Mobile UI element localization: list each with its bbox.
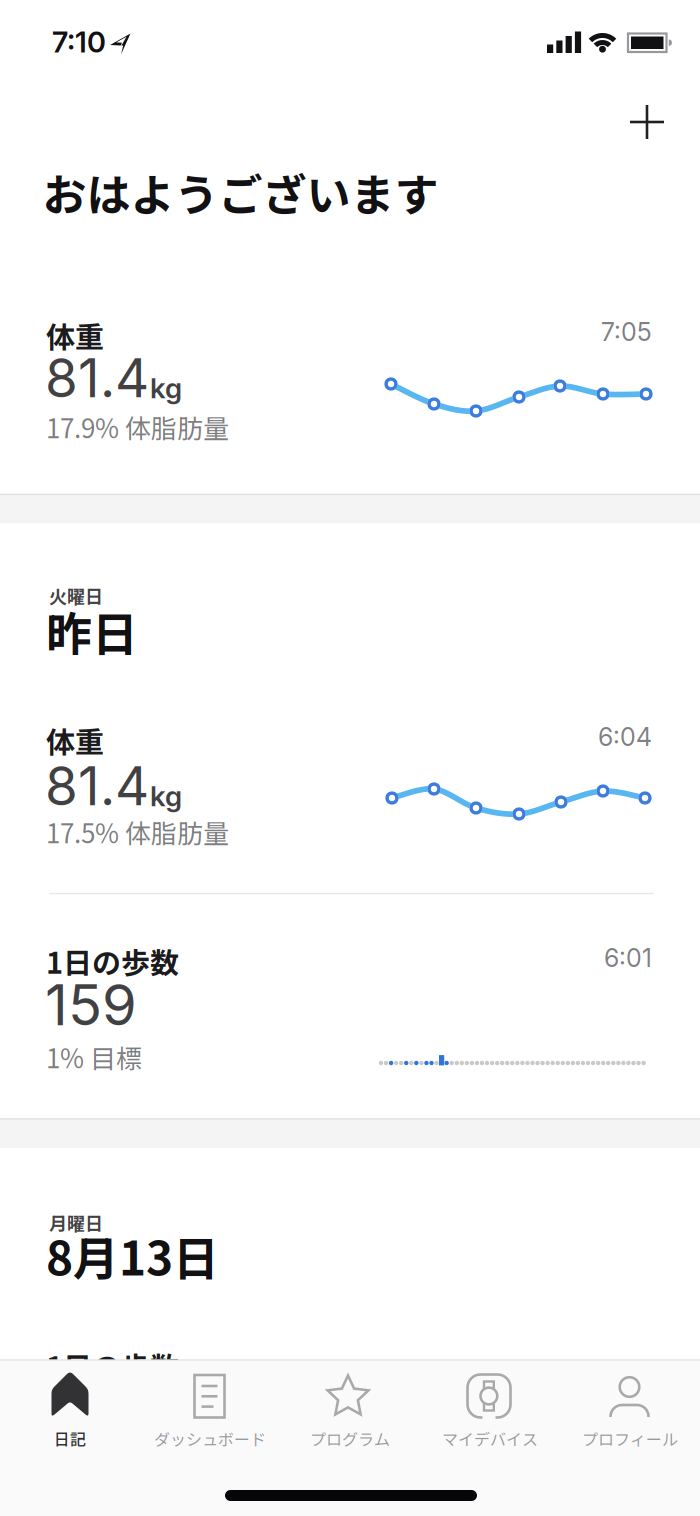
staticText: 7:05 [601, 317, 652, 347]
button[interactable]: ダッシュボード [140, 1360, 280, 1460]
staticText: 1日の歩数 [46, 940, 179, 982]
staticText: 17.9% 体脂肪量 [46, 408, 229, 446]
button[interactable]: 日記 [0, 1360, 140, 1460]
staticText: 17.5% 体脂肪量 [46, 813, 229, 851]
staticText: 81.4 [45, 754, 149, 818]
staticText: プログラム [310, 1427, 390, 1450]
button[interactable]: プロフィール [560, 1360, 700, 1460]
staticText: プロフィール [582, 1427, 678, 1450]
staticText: 火曜日 [49, 583, 103, 609]
staticText: 8月13日 [46, 1222, 219, 1289]
staticText: 7:10 [52, 24, 106, 60]
button[interactable]: プログラム [280, 1360, 420, 1460]
staticText: 159 [45, 971, 137, 1039]
button[interactable]: 体重 [0, 705, 700, 881]
staticText: 1% 目標 [46, 1038, 142, 1076]
staticText: 6:04 [598, 722, 652, 752]
staticText: おはようございます [42, 160, 438, 224]
staticText: 6:01 [604, 943, 652, 973]
button[interactable]: 体重 [0, 300, 700, 476]
staticText: マイデバイス [442, 1427, 538, 1450]
staticText: 月曜日 [49, 1210, 103, 1236]
button[interactable]: 1日の歩数 [0, 926, 700, 1095]
staticText: 昨日 [46, 598, 138, 664]
staticText: kg [150, 779, 182, 813]
staticText: 体重 [46, 314, 104, 356]
button[interactable]: マイデバイス [420, 1360, 560, 1460]
staticText: 1日の歩数 [46, 1344, 179, 1386]
staticText: 日記 [54, 1427, 86, 1450]
staticText: ダッシュボード [154, 1427, 266, 1450]
staticText: kg [150, 371, 182, 405]
staticText: 体重 [46, 719, 104, 761]
button[interactable]: 追加 [603, 78, 691, 166]
staticText: 81.4 [45, 346, 149, 410]
